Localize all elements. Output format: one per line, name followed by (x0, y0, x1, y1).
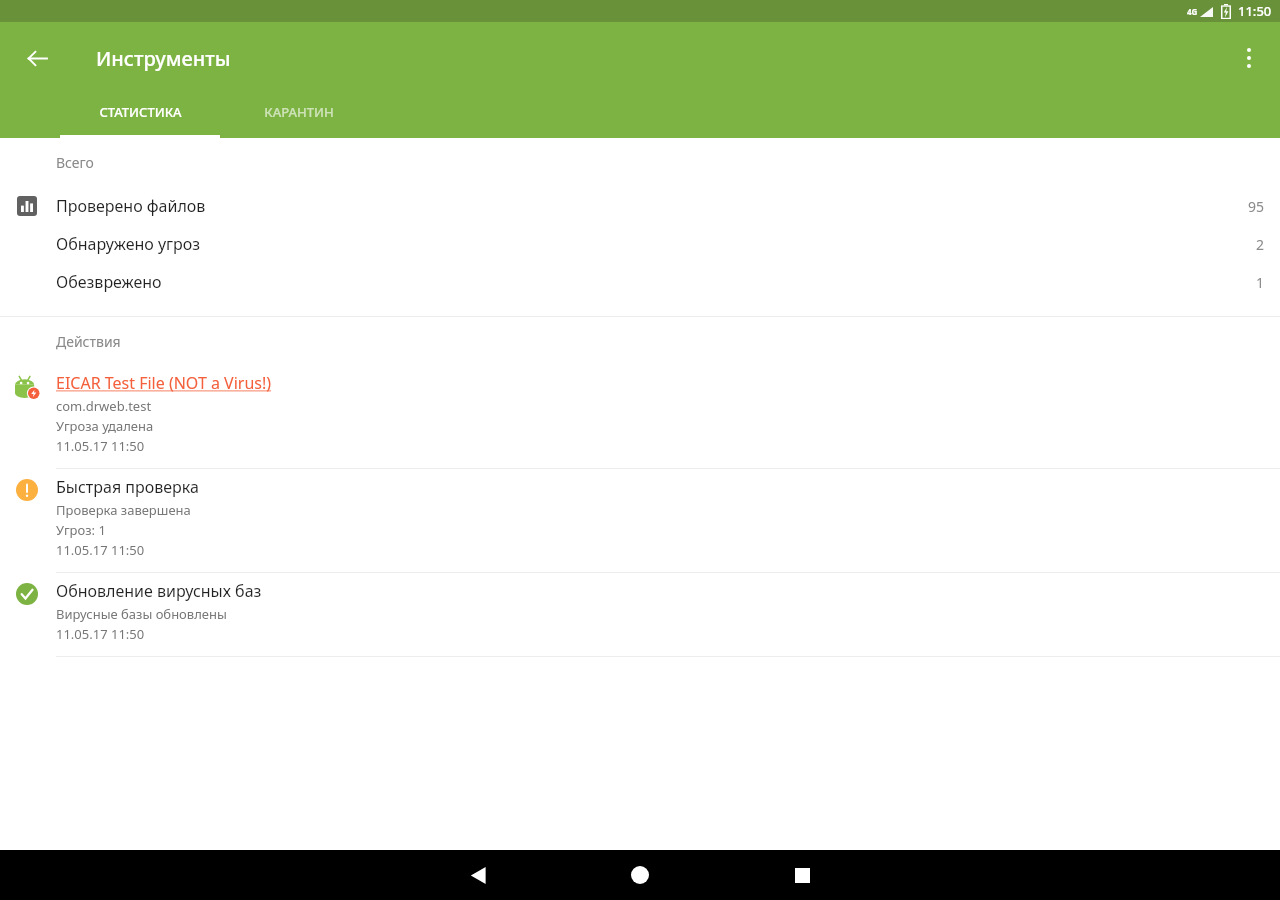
staticText: Обновление вирусных баз (56, 580, 262, 602)
staticText: Вирусные базы обновлены (56, 605, 227, 623)
staticText: Проверка завершена (56, 501, 191, 519)
staticText: Действия (56, 332, 121, 351)
staticText: Обнаружено угроз (56, 233, 201, 255)
staticText: СТАТИСТИКА (99, 103, 182, 121)
button[interactable]: Обезврежено (0, 263, 1280, 301)
button[interactable]: СТАТИСТИКА (60, 94, 220, 138)
staticText: Угроза удалена (56, 417, 154, 435)
button[interactable]: Обзор (777, 850, 827, 900)
staticText: Быстрая проверка (56, 476, 199, 498)
staticText: Угроз: 1 (56, 521, 106, 539)
staticText: 1 (1256, 273, 1265, 292)
staticText: 11.05.17 11:50 (56, 541, 145, 559)
staticText: Всего (56, 153, 94, 172)
button[interactable]: Обновление вирусных баз (0, 573, 1280, 656)
staticText: КАРАНТИН (264, 103, 334, 121)
staticText: Проверено файлов (56, 195, 206, 217)
staticText: EICAR Test File (NOT a Virus!) (56, 372, 272, 394)
staticText: 4G (1187, 6, 1198, 17)
staticText: com.drweb.test (56, 397, 152, 415)
button[interactable]: КАРАНТИН (220, 94, 378, 138)
staticText: 2 (1256, 235, 1265, 254)
button[interactable]: Назад (13, 34, 61, 82)
staticText: 11.05.17 11:50 (56, 625, 145, 643)
staticText: 95 (1248, 197, 1265, 216)
button[interactable]: Ещё (1225, 34, 1273, 82)
button[interactable]: Обнаружено угроз (0, 225, 1280, 263)
button[interactable]: Быстрая проверка (0, 469, 1280, 572)
staticText: 11.05.17 11:50 (56, 437, 145, 455)
button[interactable]: EICAR Test File (NOT a Virus!) (0, 365, 1280, 468)
button[interactable]: Назад (453, 850, 503, 900)
button[interactable]: Главный экран (615, 850, 665, 900)
staticText: Инструменты (96, 45, 231, 72)
button[interactable]: Проверено файлов (0, 187, 1280, 225)
staticText: Обезврежено (56, 271, 162, 293)
staticText: 11:50 (1238, 2, 1272, 20)
